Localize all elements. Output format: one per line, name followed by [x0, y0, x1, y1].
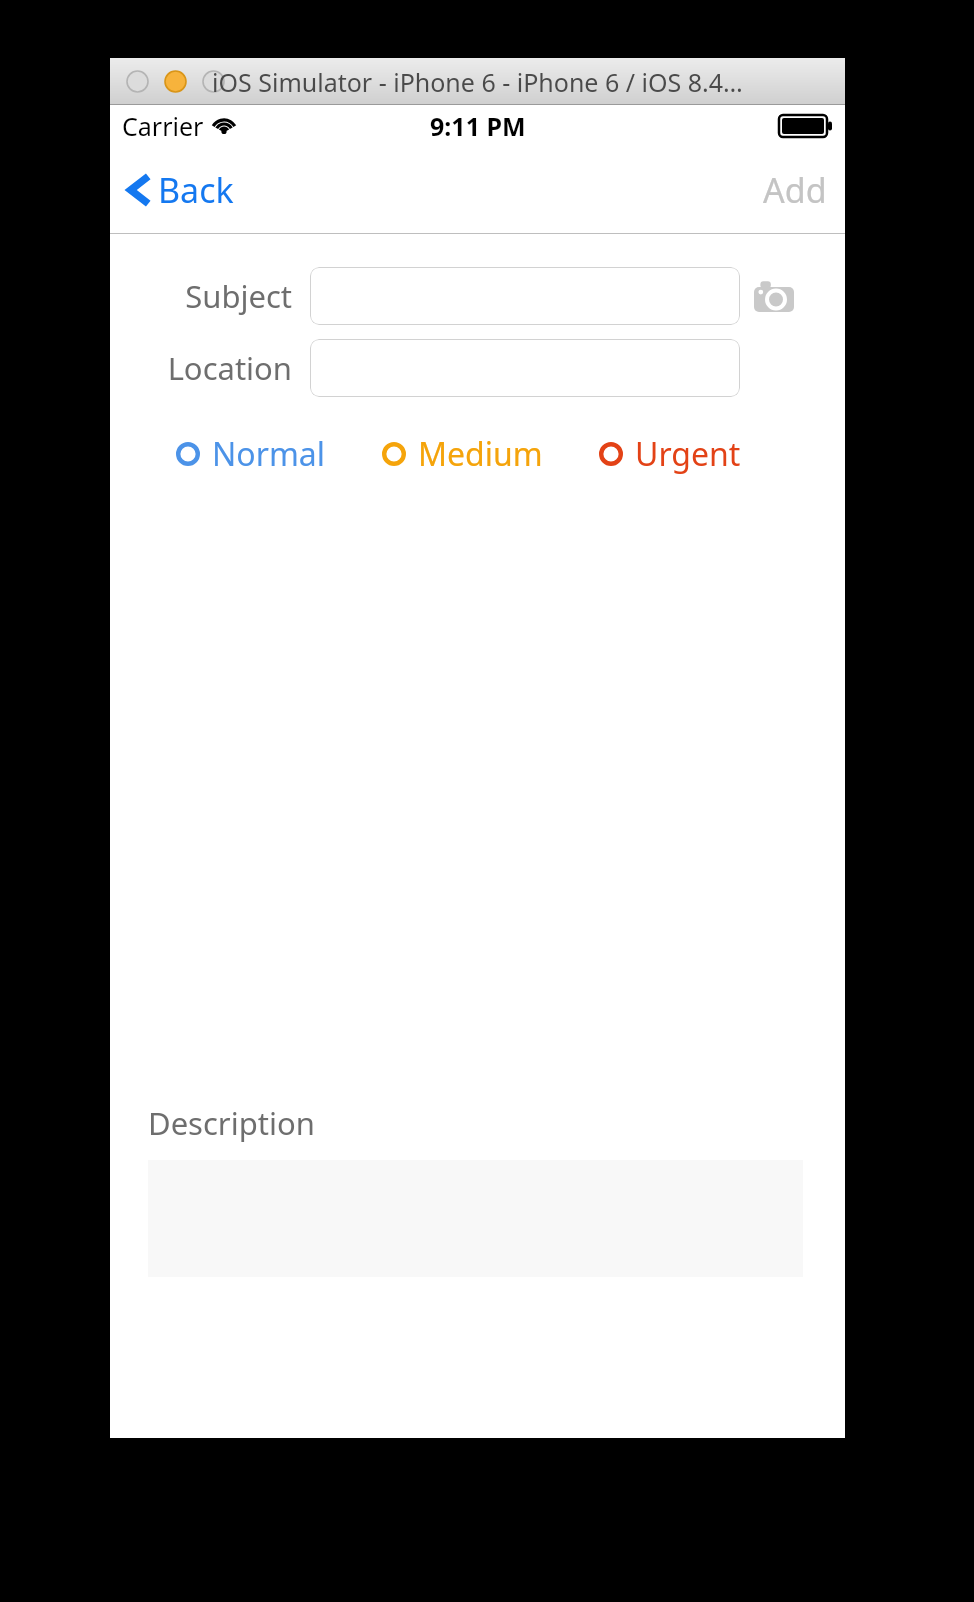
- staticText: Medium: [418, 432, 543, 476]
- button[interactable]: Medium: [378, 426, 547, 482]
- button[interactable]: Add: [745, 157, 845, 223]
- button[interactable]: Urgent: [595, 426, 745, 482]
- staticText: Add: [763, 167, 827, 213]
- button[interactable]: [310, 267, 740, 325]
- button[interactable]: Back: [110, 159, 248, 221]
- staticText: Subject: [185, 275, 292, 317]
- staticText: 9:11 PM: [430, 109, 526, 143]
- staticText: Normal: [212, 432, 326, 476]
- staticText: iOS Simulator - iPhone 6 - iPhone 6 / iO…: [212, 65, 743, 99]
- button[interactable]: Normal: [172, 426, 330, 482]
- staticText: Carrier: [122, 109, 204, 143]
- button[interactable]: [310, 339, 740, 397]
- staticText: Urgent: [635, 432, 741, 476]
- staticText: Back: [158, 167, 234, 213]
- button[interactable]: Take photo: [752, 276, 796, 316]
- staticText: Description: [148, 1102, 315, 1144]
- staticText: Location: [167, 347, 292, 389]
